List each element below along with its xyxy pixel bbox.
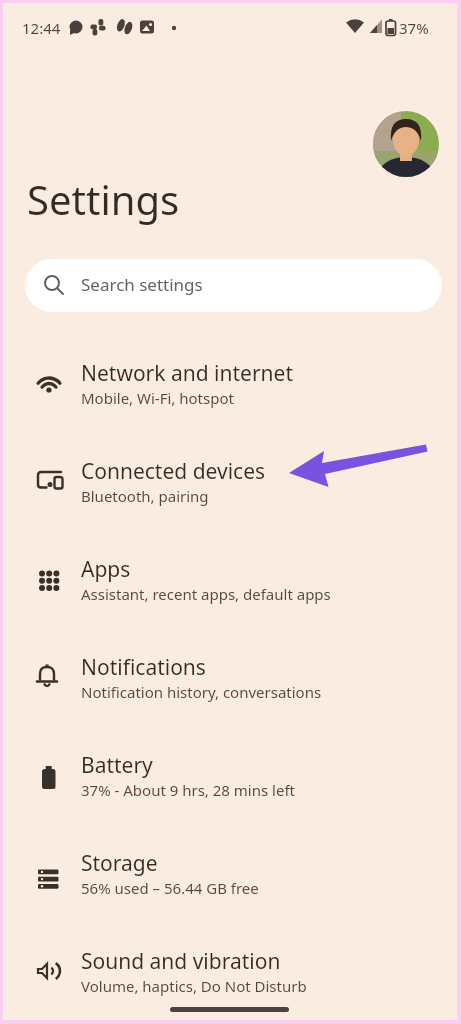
staticText: Bluetooth, pairing: [81, 486, 209, 506]
button[interactable]: Network and internet: [0, 338, 461, 436]
button[interactable]: [373, 111, 439, 177]
button[interactable]: Battery: [0, 730, 461, 828]
staticText: Storage: [81, 849, 158, 878]
staticText: 12:44: [22, 18, 61, 38]
staticText: 37% - About 9 hrs, 28 mins left: [81, 780, 295, 800]
staticText: Search settings: [81, 273, 203, 296]
staticText: Mobile, Wi-Fi, hotspot: [81, 388, 234, 408]
staticText: Battery: [81, 751, 153, 780]
button[interactable]: Search settings: [25, 259, 442, 312]
staticText: Notification history, conversations: [81, 682, 322, 702]
button[interactable]: Apps: [0, 534, 461, 632]
staticText: 37%: [399, 18, 429, 38]
staticText: Volume, haptics, Do Not Disturb: [81, 976, 307, 996]
button[interactable]: Notifications: [0, 632, 461, 730]
staticText: Settings: [27, 172, 180, 226]
staticText: Apps: [81, 555, 131, 584]
button[interactable]: Connected devices: [0, 436, 461, 534]
staticText: Sound and vibration: [81, 947, 281, 976]
staticText: Assistant, recent apps, default apps: [81, 584, 331, 604]
button[interactable]: Sound and vibration: [0, 926, 461, 1024]
button[interactable]: Storage: [0, 828, 461, 926]
staticText: 56% used – 56.44 GB free: [81, 878, 259, 898]
staticText: Notifications: [81, 653, 206, 682]
staticText: Connected devices: [81, 457, 266, 486]
staticText: Network and internet: [81, 359, 293, 388]
